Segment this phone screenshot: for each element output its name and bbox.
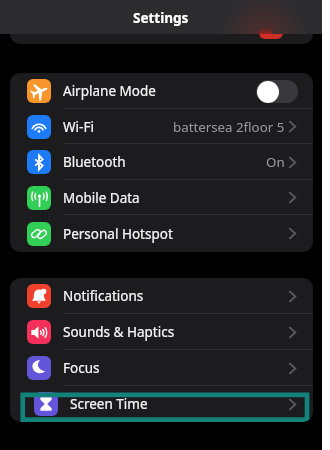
button[interactable]: Wi-Fi [10, 109, 313, 144]
staticText: Notifications [63, 287, 144, 305]
other: Open [289, 363, 296, 374]
staticText: Sounds & Haptics [63, 323, 175, 341]
other: Open [289, 228, 296, 239]
button[interactable]: Airplane Mode toggle [256, 80, 298, 103]
staticText: Settings [133, 9, 189, 27]
staticText: Wi-Fi [63, 118, 94, 136]
other: Open [289, 399, 296, 410]
staticText: Mobile Data [63, 189, 140, 207]
other: Open [289, 157, 296, 168]
button[interactable]: Personal Hotspot [10, 215, 313, 252]
staticText: Focus [63, 359, 100, 377]
button[interactable]: Mobile Data [10, 180, 313, 215]
button[interactable]: Sounds & Haptics [10, 314, 313, 350]
staticText: Airplane Mode [63, 82, 156, 100]
other: Open [289, 121, 296, 132]
other: Open [289, 192, 296, 203]
other: Open [289, 327, 296, 338]
button[interactable]: Bluetooth [10, 144, 313, 180]
button[interactable]: Airplane Mode [10, 73, 313, 109]
staticText: On [266, 153, 285, 171]
button[interactable]: Focus [10, 350, 313, 386]
other: Open [289, 291, 296, 302]
button[interactable]: Screen Time [10, 386, 313, 422]
button[interactable]: Notifications [10, 278, 313, 314]
staticText: Bluetooth [63, 153, 126, 171]
staticText: Personal Hotspot [63, 225, 173, 243]
staticText: Screen Time [70, 395, 148, 413]
staticText: battersea 2floor 5 [173, 118, 285, 136]
